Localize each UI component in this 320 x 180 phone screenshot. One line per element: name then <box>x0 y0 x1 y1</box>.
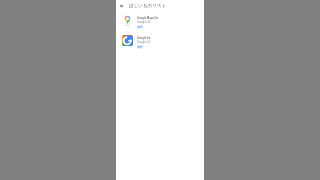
button[interactable]: Google Maps Go <box>116 13 204 33</box>
staticText: Google Go <box>137 36 151 40</box>
button[interactable]: Google Go <box>116 33 204 53</box>
staticText: ほしいものリスト <box>129 3 167 9</box>
staticText: Google LLC <box>137 20 151 24</box>
button[interactable]: Back <box>119 3 125 9</box>
staticText: 無料 <box>137 45 144 49</box>
staticText: 無料 <box>137 25 144 29</box>
staticText: Google LLC <box>137 40 151 44</box>
staticText: Google Maps Go <box>137 16 159 20</box>
